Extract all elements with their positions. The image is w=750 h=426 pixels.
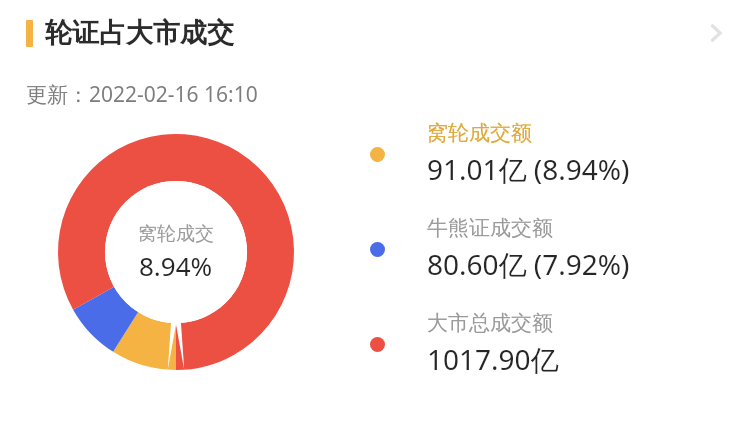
staticText: 8.94% [139,248,213,283]
staticText: 轮证占大市成交 [45,16,234,50]
button[interactable]: 牛熊证成交额 [370,207,730,291]
staticText: 窝轮成交额 [427,120,532,146]
button[interactable]: 轮证占大市成交 [0,0,750,66]
button[interactable]: 窝轮成交额 [370,112,730,196]
staticText: 80.60亿 (7.92%) [427,245,630,283]
button[interactable]: More [692,9,740,57]
button[interactable]: 大市总成交额 [370,302,730,386]
staticText: 大市总成交额 [427,310,553,336]
staticText: 牛熊证成交额 [427,215,553,241]
staticText: 1017.90亿 [427,340,559,378]
staticText: 更新：2022-02-16 16:10 [26,80,258,109]
staticText: 窝轮成交 [138,222,214,246]
staticText: 91.01亿 (8.94%) [427,150,630,188]
